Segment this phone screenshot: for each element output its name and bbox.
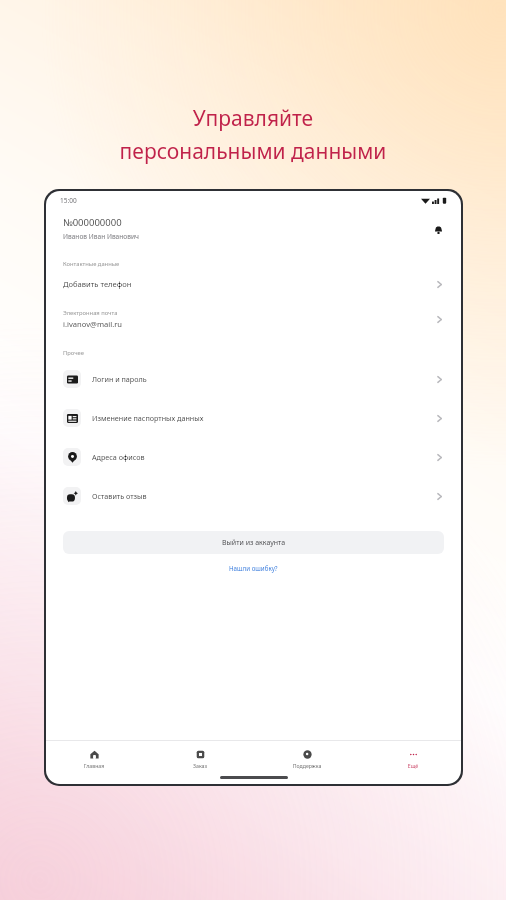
staticText: Поддержка: [279, 762, 335, 769]
button[interactable]: Главная: [66, 746, 122, 772]
staticText: Изменение паспортных данных: [92, 413, 435, 423]
staticText: Добавить телефон: [63, 279, 435, 289]
staticText: Заказ: [172, 762, 228, 769]
staticText: Прочее: [63, 349, 84, 357]
staticText: Оставить отзыв: [92, 491, 435, 501]
staticText: Выйти из аккаунта: [222, 538, 286, 548]
button[interactable]: Электронная почта: [46, 309, 461, 329]
staticText: 15:00: [60, 196, 77, 205]
button[interactable]: Ещё: [385, 746, 441, 772]
staticText: Иванов Иван Иванович: [63, 232, 139, 241]
button[interactable]: Выйти из аккаунта: [63, 531, 444, 554]
button[interactable]: Добавить телефон: [46, 277, 461, 291]
staticText: Ещё: [385, 762, 441, 769]
button[interactable]: Изменение паспортных данных: [46, 402, 461, 434]
button[interactable]: Уведомления: [430, 221, 446, 237]
button[interactable]: Адреса офисов: [46, 441, 461, 473]
button[interactable]: Нашли ошибку?: [46, 564, 461, 572]
staticText: персональными данными: [0, 137, 506, 166]
staticText: Нашли ошибку?: [229, 564, 278, 572]
staticText: №000000000: [63, 216, 122, 229]
staticText: Адреса офисов: [92, 452, 435, 462]
staticText: Логин и пароль: [92, 374, 435, 384]
staticText: Контактные данные: [63, 260, 120, 268]
button[interactable]: Заказ: [172, 746, 228, 772]
staticText: Управляйте: [0, 104, 506, 133]
button[interactable]: Логин и пароль: [46, 363, 461, 395]
staticText: Главная: [66, 762, 122, 769]
button[interactable]: Оставить отзыв: [46, 480, 461, 512]
staticText: i.ivanov@mail.ru: [63, 319, 123, 329]
staticText: Электронная почта: [63, 309, 118, 317]
button[interactable]: Поддержка: [279, 746, 335, 772]
